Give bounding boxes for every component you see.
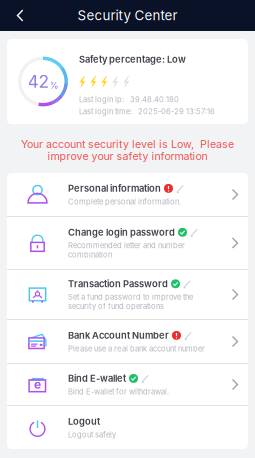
staticText: Last login time: [79,107,132,116]
staticText: Logout [68,416,100,427]
button[interactable]: Transaction Password [7,270,248,319]
button[interactable]: Bank Account Number [7,320,248,363]
staticText: Logout safely [68,430,116,439]
staticText: Bind E-wallet [68,373,126,384]
button[interactable]: e [7,364,248,405]
staticText: improve your safety information [47,149,207,162]
staticText: Transaction Password [68,278,168,289]
staticText: 39.48.40.180 [130,95,179,104]
staticText: Security Center [77,7,177,23]
staticText: Bind E-wallet for withdrawal. [68,387,169,396]
button[interactable]: Personal information [7,173,248,216]
staticText: 2025-06-29 13:57:16 [138,107,215,116]
staticText: Bank Account Number [68,330,169,341]
staticText: Your account security level is Low, Plea… [21,137,234,150]
button[interactable]: Back [0,0,40,31]
staticText: % [49,80,58,91]
staticText: Change login password [68,227,175,238]
staticText: Recommended letter and number combinatio… [68,241,185,259]
staticText: Complete personal information. [68,197,181,206]
staticText: Set a fund password to improve the secur… [68,292,193,311]
button[interactable]: Logout [7,406,248,449]
staticText: Personal information [68,183,161,194]
staticText: Safety percentage: Low [79,54,186,65]
button[interactable]: Change login password [7,217,248,269]
staticText: e [34,377,41,392]
staticText: Please use a real bank account number [68,344,205,353]
staticText: Last login ip: [79,95,124,104]
staticText: 42 [27,71,49,92]
